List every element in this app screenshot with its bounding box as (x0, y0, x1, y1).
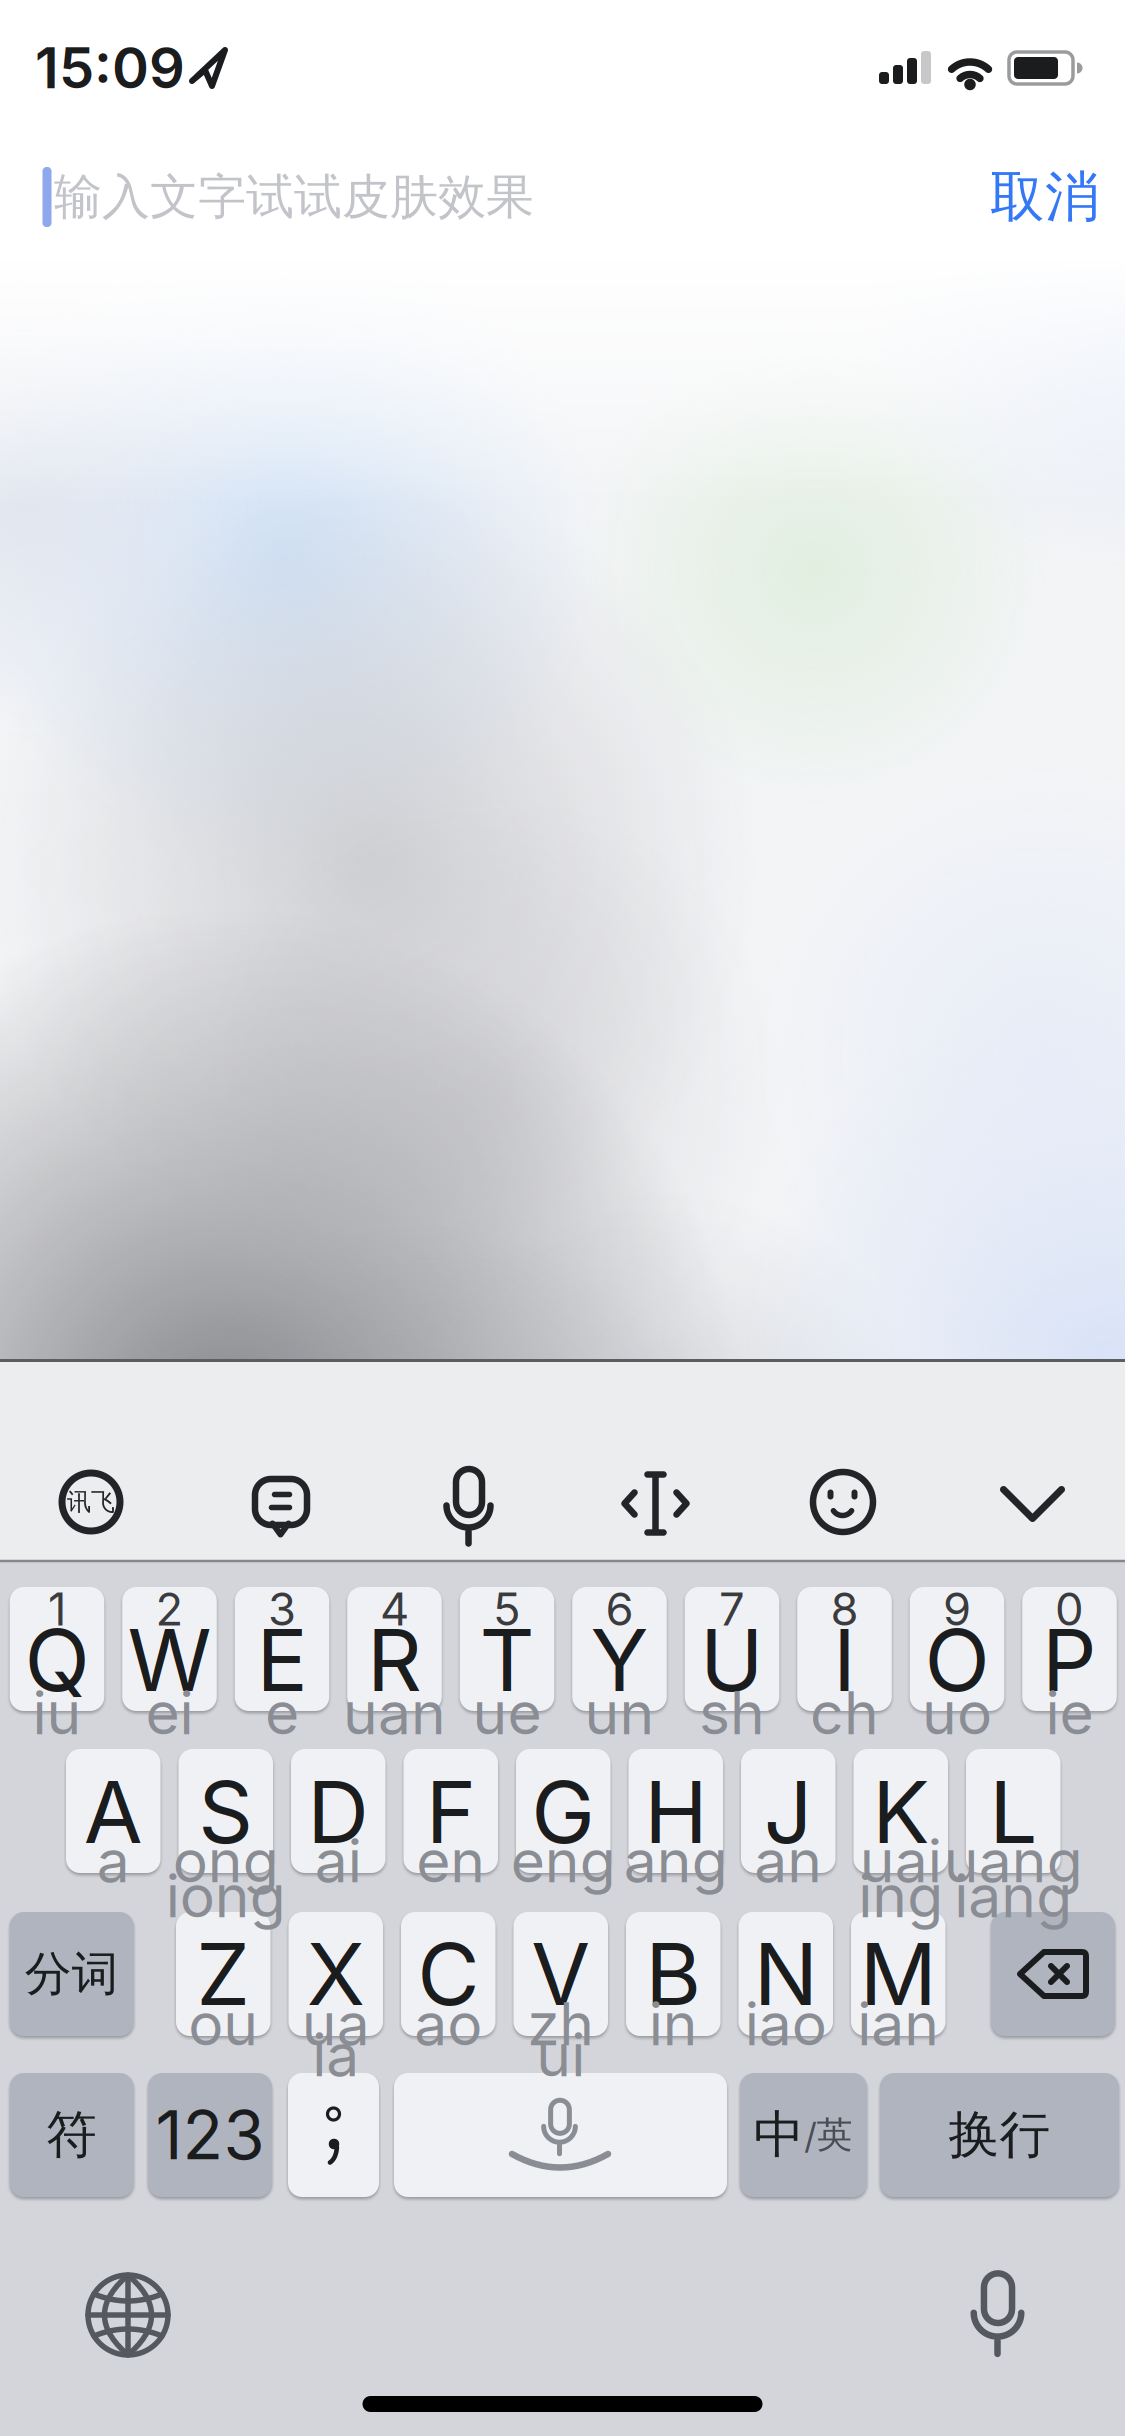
button[interactable] (798, 1457, 888, 1547)
staticText: I (833, 1608, 856, 1712)
button[interactable]: S (178, 1749, 273, 1873)
staticText: H (644, 1760, 707, 1864)
staticText: O (924, 1608, 989, 1712)
staticText: 取消 (990, 163, 1100, 231)
staticText: 6 (605, 1582, 633, 1636)
button[interactable] (347, 1587, 442, 1711)
button[interactable]: N (738, 1912, 833, 2036)
staticText: 5 (493, 1582, 521, 1636)
button[interactable] (10, 1587, 104, 1711)
staticText: ie (1045, 1677, 1093, 1748)
button[interactable]: B (626, 1912, 720, 2036)
button[interactable] (611, 1459, 701, 1549)
button[interactable]: 123 (148, 2073, 272, 2197)
staticText: iang (954, 1860, 1072, 1931)
button[interactable]: 取消 (960, 142, 1125, 252)
staticText: 8 (830, 1582, 858, 1636)
button[interactable] (910, 1587, 1004, 1711)
staticText: ang (624, 1825, 728, 1896)
staticText: ua (302, 1988, 370, 2059)
staticText: ai (315, 1825, 362, 1896)
staticText: 3 (268, 1582, 296, 1636)
button[interactable] (797, 1587, 892, 1711)
staticText: a (97, 1825, 130, 1896)
button[interactable] (394, 2073, 727, 2197)
button[interactable]: M (851, 1912, 945, 2036)
staticText: ch (810, 1677, 879, 1748)
button[interactable]: K (853, 1749, 948, 1873)
button[interactable]: G (516, 1749, 610, 1873)
staticText: ing (858, 1860, 943, 1931)
staticText: an (754, 1825, 822, 1896)
staticText: E (256, 1608, 307, 1712)
button[interactable]: D (291, 1749, 385, 1873)
staticText: uo (922, 1677, 992, 1748)
button[interactable]: L (966, 1749, 1060, 1873)
staticText: J (764, 1760, 813, 1864)
staticText: ui (536, 2019, 585, 2090)
staticText: ou (188, 1988, 258, 2059)
staticText: 符 (46, 2103, 97, 2167)
staticText: Z (196, 1922, 250, 2026)
staticText: 4 (380, 1582, 409, 1636)
staticText: S (198, 1760, 253, 1864)
button[interactable]: 符 (10, 2073, 134, 2197)
button[interactable]: Z (176, 1912, 270, 2036)
staticText: en (416, 1825, 485, 1896)
staticText: iao (745, 1988, 827, 2059)
button[interactable]: X (288, 1912, 383, 2036)
button[interactable]: 讯飞 (46, 1457, 136, 1547)
staticText: 换行 (948, 2103, 1050, 2167)
staticText: eng (511, 1825, 616, 1896)
staticText: 9 (943, 1582, 971, 1636)
staticText: ue (472, 1677, 541, 1748)
staticText: Y (590, 1608, 648, 1712)
button[interactable]: J (741, 1749, 835, 1873)
button[interactable] (943, 2257, 1053, 2367)
staticText: ian (857, 1988, 939, 2059)
staticText: ei (145, 1677, 193, 1748)
staticText: 分词 (25, 1945, 119, 2003)
staticText: ao (414, 1988, 482, 2059)
staticText: uan (343, 1677, 446, 1748)
button[interactable] (740, 2073, 867, 2197)
button[interactable] (235, 1587, 329, 1711)
button[interactable] (572, 1587, 667, 1711)
button[interactable] (988, 1459, 1078, 1549)
staticText: 讯飞 (67, 1487, 115, 1517)
button[interactable]: A (66, 1749, 160, 1873)
button[interactable]: V (513, 1912, 608, 2036)
staticText: iu (32, 1677, 81, 1748)
staticText: A (84, 1760, 143, 1864)
staticText: in (649, 1988, 698, 2059)
button[interactable] (1022, 1587, 1117, 1711)
staticText: G (531, 1760, 595, 1864)
staticText: T (479, 1608, 534, 1712)
button[interactable] (460, 1587, 554, 1711)
staticText: ong (173, 1825, 279, 1896)
button[interactable]: C (401, 1912, 495, 2036)
button[interactable]: F (403, 1749, 498, 1873)
staticText: X (307, 1922, 365, 2026)
staticText: K (872, 1760, 929, 1864)
staticText: C (417, 1922, 479, 2026)
button[interactable] (122, 1587, 217, 1711)
staticText: 中 (753, 2103, 804, 2167)
staticText: 15:09 (35, 34, 185, 102)
button[interactable] (991, 1912, 1115, 2036)
button[interactable]: 分词 (10, 1912, 134, 2036)
staticText: N (754, 1922, 818, 2026)
button[interactable]: H (628, 1749, 723, 1873)
staticText: L (989, 1760, 1037, 1864)
staticText: uang (944, 1825, 1083, 1896)
button[interactable] (73, 2260, 183, 2370)
staticText: un (584, 1677, 654, 1748)
button[interactable] (685, 1587, 779, 1711)
staticText: W (127, 1608, 211, 1712)
staticText: sh (699, 1677, 765, 1748)
button[interactable] (288, 2073, 379, 2197)
button[interactable] (236, 1457, 326, 1547)
button[interactable]: 换行 (880, 2073, 1119, 2197)
staticText: 2 (155, 1582, 183, 1636)
staticText: /英 (804, 2112, 852, 2158)
